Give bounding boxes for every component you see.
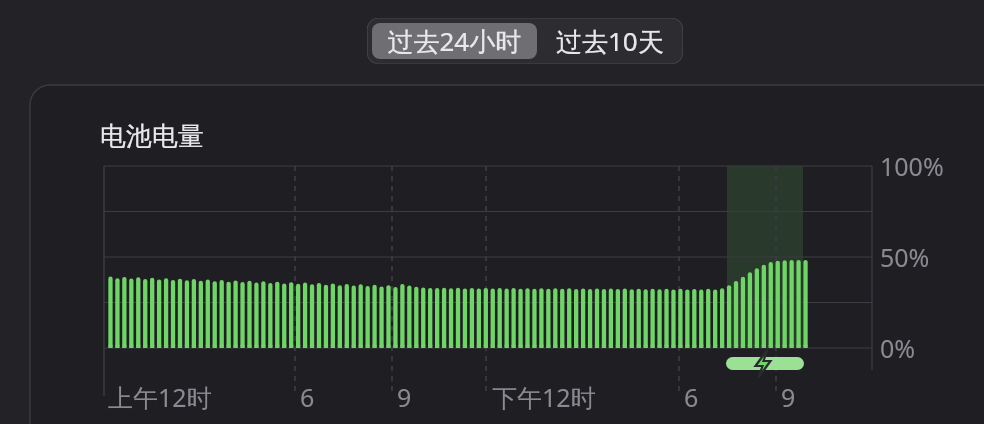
- button[interactable]: Battery level chart, past 24 hours: [30, 85, 984, 424]
- button[interactable]: [540, 23, 680, 59]
- button[interactable]: [372, 23, 537, 59]
